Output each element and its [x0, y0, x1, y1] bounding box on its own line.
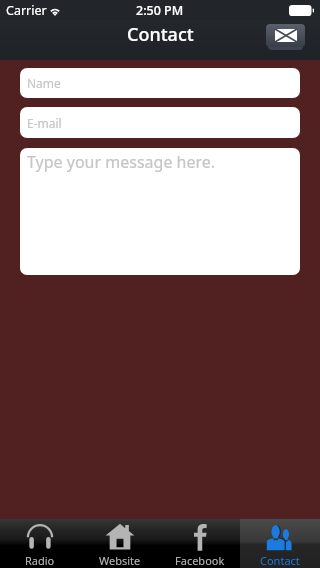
staticText: E-mail — [27, 115, 62, 131]
button[interactable]: E-mail — [20, 107, 300, 138]
button[interactable]: Compose email — [266, 24, 305, 50]
staticText: Name — [27, 75, 61, 91]
staticText: 2:50 PM — [136, 2, 184, 19]
staticText: Contact — [260, 553, 300, 568]
button[interactable]: Name — [20, 68, 300, 98]
staticText: Website — [99, 553, 141, 568]
button[interactable]: Facebook — [160, 519, 240, 568]
staticText: Facebook — [175, 553, 225, 568]
staticText: Carrier — [6, 2, 47, 19]
staticText: Radio — [25, 553, 55, 568]
button[interactable]: Type your message here. — [20, 148, 300, 275]
staticText: Type your message here. — [27, 151, 216, 173]
button[interactable]: Contact — [240, 519, 320, 568]
staticText: Contact — [127, 22, 194, 47]
button[interactable]: Radio — [0, 519, 80, 568]
button[interactable]: Website — [80, 519, 160, 568]
